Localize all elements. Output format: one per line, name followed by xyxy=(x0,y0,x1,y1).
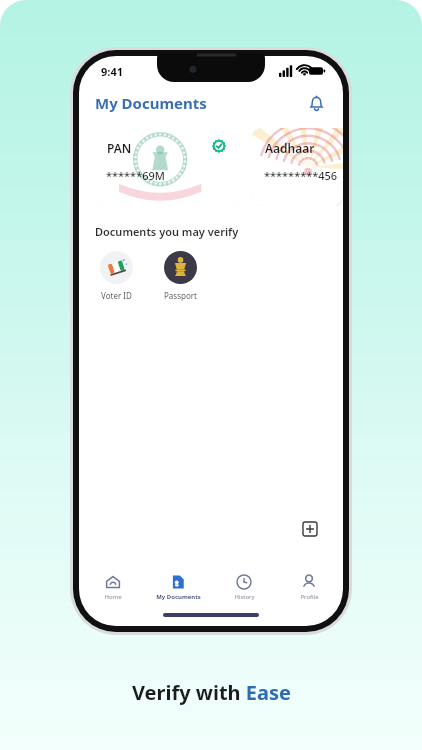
button[interactable]: My Documents xyxy=(147,574,209,601)
staticText: Profile xyxy=(300,593,319,601)
staticText: My Documents xyxy=(95,93,207,113)
button[interactable]: Notifications xyxy=(305,92,327,114)
button[interactable]: Add document xyxy=(295,514,325,544)
button[interactable]: PAN xyxy=(93,128,239,206)
staticText: Voter ID xyxy=(101,290,132,301)
staticText: Documents you may verify xyxy=(95,224,239,239)
staticText: My Documents xyxy=(156,593,201,601)
button[interactable]: Home xyxy=(82,574,144,601)
button[interactable]: Aadhaar xyxy=(251,128,343,206)
staticText: 9:41 xyxy=(101,64,123,79)
staticText: *********456 xyxy=(264,168,338,183)
staticText: Passport xyxy=(164,290,197,301)
staticText: ******69M xyxy=(106,168,165,183)
button[interactable]: Profile xyxy=(278,574,340,601)
button[interactable]: History xyxy=(213,574,275,601)
staticText: Verify with Ease xyxy=(132,679,291,706)
button[interactable]: Voter ID xyxy=(93,251,139,301)
staticText: Home xyxy=(104,593,122,601)
staticText: History xyxy=(234,593,255,601)
staticText: PAN xyxy=(107,140,132,156)
staticText: Aadhaar xyxy=(265,140,315,156)
button[interactable]: Passport xyxy=(157,251,203,301)
